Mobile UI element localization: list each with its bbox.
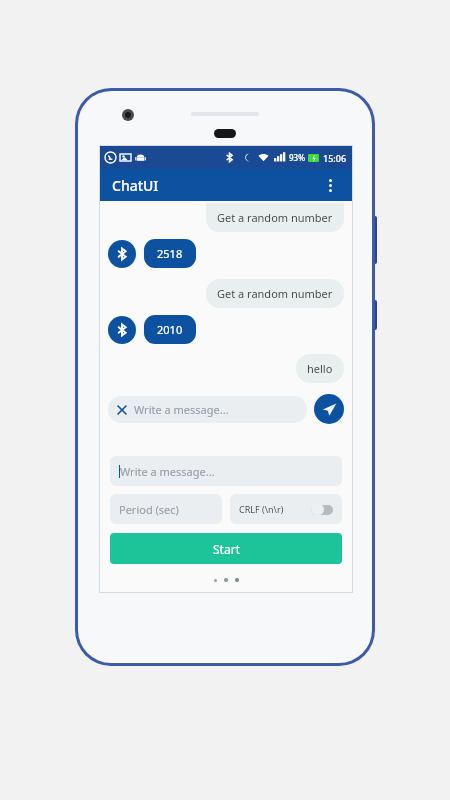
staticText: 2010 xyxy=(157,322,183,337)
button[interactable]: Get a random number xyxy=(206,279,344,308)
staticText: Get a random number xyxy=(217,210,333,225)
staticText: Period (sec) xyxy=(119,502,179,517)
button[interactable]: Get a random number xyxy=(206,203,344,232)
staticText: Start xyxy=(213,541,240,557)
button[interactable]: Start xyxy=(110,533,342,564)
staticText: 15:06 xyxy=(323,152,347,164)
button[interactable]: hello xyxy=(296,354,344,383)
staticText: hello xyxy=(307,361,333,376)
button[interactable]: 2518 xyxy=(144,239,196,268)
staticText: Write a message... xyxy=(134,402,229,417)
staticText: Write a message... xyxy=(120,464,215,479)
button[interactable]: Period (sec) xyxy=(110,494,222,524)
button[interactable]: CRLF (\n\r) xyxy=(230,494,342,524)
button[interactable]: Send xyxy=(314,394,344,424)
staticText: Get a random number xyxy=(217,286,333,301)
button[interactable]: 2010 xyxy=(144,315,196,344)
button[interactable]: Write a message... xyxy=(108,396,307,423)
staticText: ChatUI xyxy=(112,176,159,195)
button[interactable]: Write a message... xyxy=(110,456,342,486)
staticText: CRLF (\n\r) xyxy=(239,503,284,515)
staticText: 2518 xyxy=(157,246,183,261)
staticText: 93% xyxy=(289,152,305,163)
button[interactable]: Bluetooth xyxy=(108,316,136,344)
button[interactable]: More options xyxy=(316,171,344,199)
button[interactable]: Bluetooth xyxy=(108,240,136,268)
